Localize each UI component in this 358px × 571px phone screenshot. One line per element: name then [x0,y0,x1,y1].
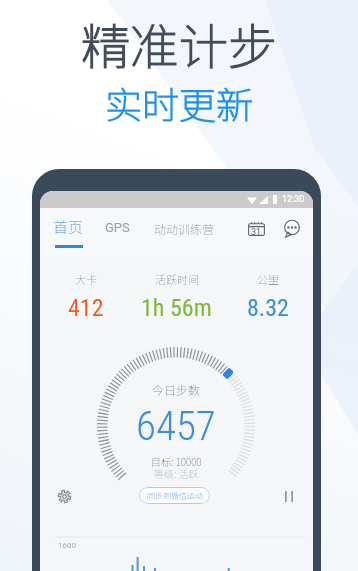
button[interactable]: GPS [101,217,134,238]
staticText: 动动训练营 [154,220,215,237]
button[interactable]: 首页 [48,213,89,251]
button[interactable]: Pause [277,484,301,508]
button[interactable]: 动动训练营 [150,217,219,240]
staticText: 12:30 [282,194,305,205]
staticText: 8.32 [247,294,289,322]
staticText: 公里 [257,271,279,287]
staticText: 精准计步 [81,8,278,79]
staticText: 大卡 [75,271,97,287]
staticText: 实时更新 [105,76,253,130]
staticText: GPS [105,220,130,235]
staticText: 412 [68,294,104,322]
staticText: 1600 [58,541,76,550]
staticText: 等级: 活跃 [154,466,199,480]
staticText: 6457 [136,402,216,450]
button[interactable]: 同步到微信运动 [139,487,210,504]
staticText: 1h 56m [141,294,212,322]
button[interactable]: Settings [52,484,76,508]
button[interactable]: Calendar [244,217,268,241]
staticText: 今日步数 [152,381,201,398]
button[interactable]: Messages [280,216,304,240]
staticText: 同步到微信运动 [147,490,203,502]
staticText: 首页 [53,216,84,238]
staticText: 目标: 10000 [151,454,202,468]
staticText: 活跃时间 [155,271,199,287]
staticText: 31 [251,227,262,238]
